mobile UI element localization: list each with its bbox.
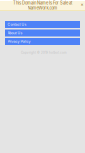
button[interactable]: About Us bbox=[5, 29, 80, 36]
staticText: This Domain Name Is For Sale at bbox=[13, 0, 72, 5]
staticText: About Us bbox=[7, 31, 22, 35]
staticText: Copyright © 2019 hotbot.com bbox=[21, 51, 67, 54]
staticText: × bbox=[80, 1, 83, 7]
staticText: NameWork.com bbox=[27, 5, 57, 10]
button[interactable]: Contact Us bbox=[5, 21, 80, 28]
staticText: Contact Us bbox=[7, 22, 26, 27]
staticText: Privacy Policy bbox=[7, 39, 30, 44]
button[interactable]: Close banner bbox=[79, 1, 85, 7]
button[interactable]: Privacy Policy bbox=[5, 38, 80, 45]
